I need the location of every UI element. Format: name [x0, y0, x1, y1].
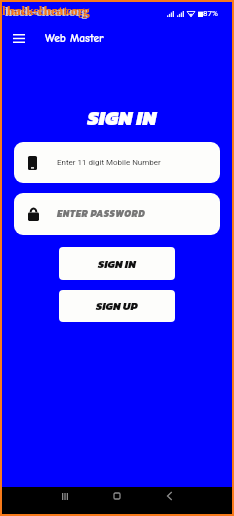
- staticText: SIGN IN: [98, 256, 136, 272]
- staticText: hack-cheat.org: [5, 4, 88, 18]
- button[interactable]: Back: [153, 483, 185, 509]
- button[interactable]: Home: [101, 483, 133, 509]
- staticText: ENTER PASSWORD: [57, 207, 146, 221]
- staticText: 87%: [203, 9, 218, 18]
- staticText: Web Master: [45, 32, 104, 45]
- button[interactable]: SIGN UP: [59, 290, 175, 322]
- staticText: hack-cheat.org: [7, 3, 90, 17]
- button[interactable]: SIGN IN: [59, 247, 175, 280]
- button[interactable]: Recents: [49, 483, 81, 509]
- button[interactable]: [14, 142, 220, 183]
- staticText: SIGN UP: [96, 298, 138, 314]
- button[interactable]: [14, 193, 220, 235]
- staticText: Enter 11 digit Mobile Number: [57, 158, 161, 167]
- staticText: SIGN IN: [7, 103, 234, 133]
- button[interactable]: Menu: [7, 26, 31, 50]
- staticText: hack-cheat.org: [2, 3, 85, 17]
